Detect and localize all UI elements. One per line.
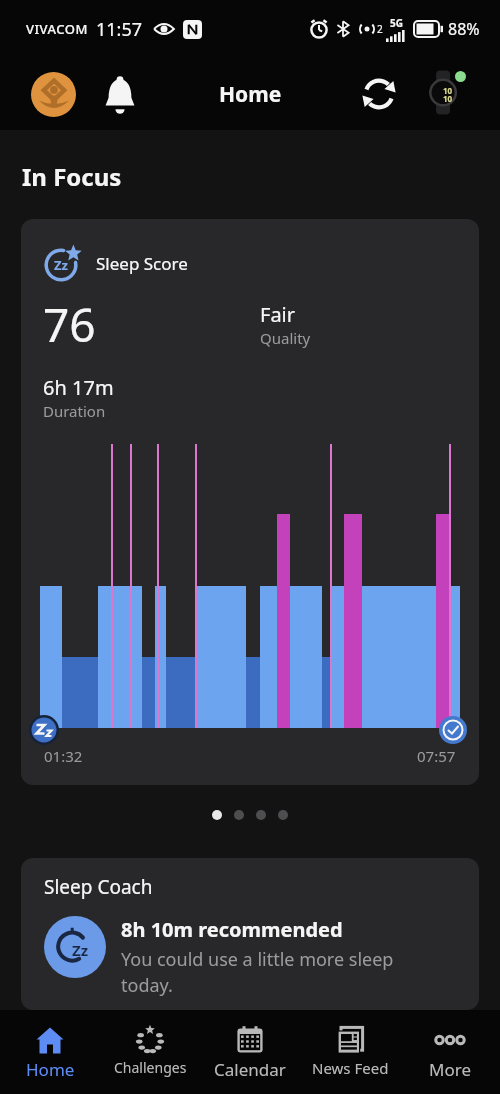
staticText: Quality	[260, 328, 311, 348]
staticText: Zz	[54, 256, 68, 274]
staticText: 88%	[448, 18, 480, 40]
button[interactable]	[359, 74, 399, 114]
staticText: You could use a little more sleep today.	[121, 947, 394, 998]
staticText: Duration	[43, 401, 106, 421]
staticText: Sleep Coach	[44, 874, 153, 900]
staticText: 8h 10m recommended	[121, 916, 343, 943]
staticText: Sleep Score	[96, 252, 188, 275]
staticText: Challenges	[114, 1058, 187, 1077]
staticText: Home	[219, 80, 282, 109]
button[interactable]: 10 10	[421, 71, 467, 117]
button[interactable]	[31, 72, 76, 117]
button[interactable]: Sleep Coach	[21, 858, 479, 1010]
button[interactable]: Zz	[21, 219, 479, 785]
staticText: Home	[26, 1058, 75, 1081]
button[interactable]	[100, 74, 140, 114]
staticText: Zz	[72, 940, 89, 960]
button[interactable]: News Feed	[300, 1010, 400, 1094]
staticText: 01:32	[44, 746, 83, 766]
staticText: VIVACOM	[26, 20, 88, 38]
staticText: News Feed	[312, 1058, 389, 1078]
staticText: 10 10	[443, 85, 453, 104]
staticText: In Focus	[22, 160, 122, 193]
staticText: 6h 17m	[43, 374, 114, 401]
staticText: Calendar	[214, 1058, 286, 1081]
staticText: 5G	[390, 16, 403, 30]
staticText: More	[429, 1058, 471, 1081]
staticText: 2	[377, 22, 383, 36]
button[interactable]: Calendar	[200, 1010, 300, 1094]
button[interactable]: Challenges	[100, 1010, 200, 1094]
button[interactable]: Home	[0, 1010, 100, 1094]
staticText: 07:57	[417, 746, 456, 766]
button[interactable]: More	[400, 1010, 500, 1094]
staticText: 11:57	[96, 17, 143, 42]
staticText: Fair	[260, 301, 296, 328]
staticText: 76	[43, 293, 96, 356]
